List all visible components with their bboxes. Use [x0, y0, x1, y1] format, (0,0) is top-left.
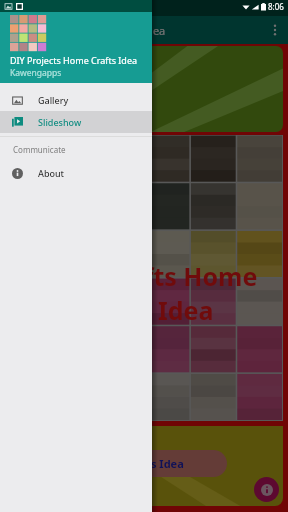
button[interactable]: Slideshow	[0, 111, 152, 133]
staticText: Kawengapps	[10, 67, 62, 79]
button[interactable]: About	[0, 162, 152, 184]
staticText: Communicate	[13, 144, 66, 155]
staticText: 8:06	[268, 1, 284, 12]
staticText: Crafts Home	[102, 259, 258, 293]
staticText: Kawengapps	[7, 46, 119, 69]
staticText: DIY Projects Home Crafts Idea	[10, 23, 166, 38]
button[interactable]: DIY Projects Home Crafts Idea	[5, 450, 227, 477]
button[interactable]: About	[254, 477, 279, 502]
button[interactable]: More options	[262, 16, 288, 44]
staticText: Idea	[158, 293, 214, 327]
button[interactable]: Gallery	[0, 89, 152, 111]
staticText: DIY Projects Home Crafts Idea	[10, 54, 138, 66]
staticText: Gallery	[38, 94, 69, 106]
staticText: DIY Projects Home Crafts Idea	[19, 456, 184, 471]
staticText: About	[38, 167, 65, 179]
staticText: Slideshow	[38, 116, 82, 128]
